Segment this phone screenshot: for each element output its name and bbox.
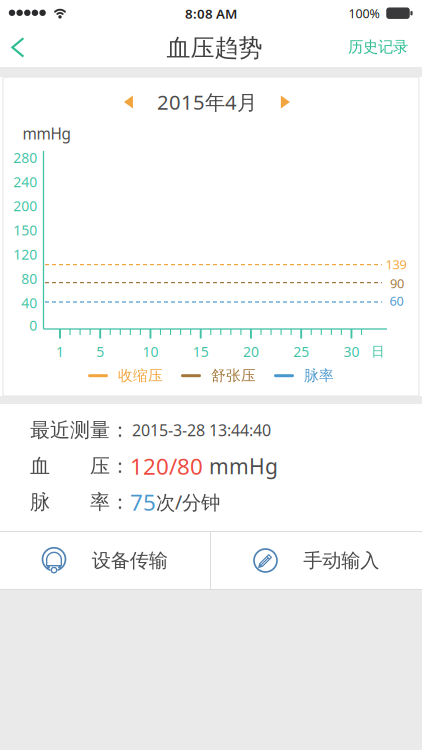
staticText: 120: [13, 245, 37, 264]
staticText: 80: [21, 269, 37, 288]
staticText: 手动输入: [303, 548, 379, 573]
staticText: 率：: [90, 489, 130, 515]
staticText: 150: [13, 221, 37, 240]
staticText: mmHg: [22, 123, 70, 144]
staticText: 60: [389, 292, 403, 309]
staticText: 280: [13, 148, 37, 167]
staticText: 200: [13, 196, 37, 215]
staticText: 舒张压: [211, 366, 256, 385]
staticText: mmHg: [209, 452, 278, 480]
button[interactable]: Previous month: [116, 87, 141, 116]
staticText: 5: [96, 342, 104, 361]
button[interactable]: Next month: [272, 87, 298, 116]
staticText: 历史记录: [348, 37, 408, 57]
staticText: 0: [29, 316, 37, 335]
staticText: 脉: [30, 489, 50, 515]
staticText: 最近测量：: [30, 417, 130, 443]
staticText: 20: [243, 342, 259, 361]
staticText: 次/分钟: [156, 489, 220, 515]
staticText: 设备传输: [92, 548, 168, 573]
staticText: 收缩压: [118, 366, 163, 385]
staticText: 25: [293, 342, 309, 361]
button[interactable]: 设备传输: [0, 532, 210, 589]
staticText: 压：: [90, 453, 130, 479]
staticText: 1: [56, 342, 64, 361]
staticText: 8:08 AM: [185, 4, 237, 23]
staticText: 血: [30, 453, 50, 479]
button[interactable]: Back: [3, 29, 33, 66]
staticText: 脉率: [304, 366, 334, 385]
staticText: 2015年4月: [157, 88, 257, 116]
staticText: 30: [343, 342, 359, 361]
staticText: 240: [13, 172, 37, 191]
staticText: 日: [371, 343, 384, 360]
staticText: 75: [130, 487, 156, 517]
staticText: 90: [390, 274, 404, 292]
staticText: 100%: [348, 5, 379, 22]
staticText: 2015-3-28 13:44:40: [132, 419, 271, 441]
staticText: 血压趋势: [166, 33, 262, 63]
staticText: 15: [193, 342, 209, 361]
staticText: 139: [385, 256, 406, 273]
button[interactable]: 历史记录: [344, 29, 412, 65]
staticText: 120/80: [130, 451, 203, 481]
staticText: 40: [21, 293, 37, 312]
staticText: 10: [142, 342, 158, 361]
button[interactable]: 手动输入: [211, 532, 422, 589]
